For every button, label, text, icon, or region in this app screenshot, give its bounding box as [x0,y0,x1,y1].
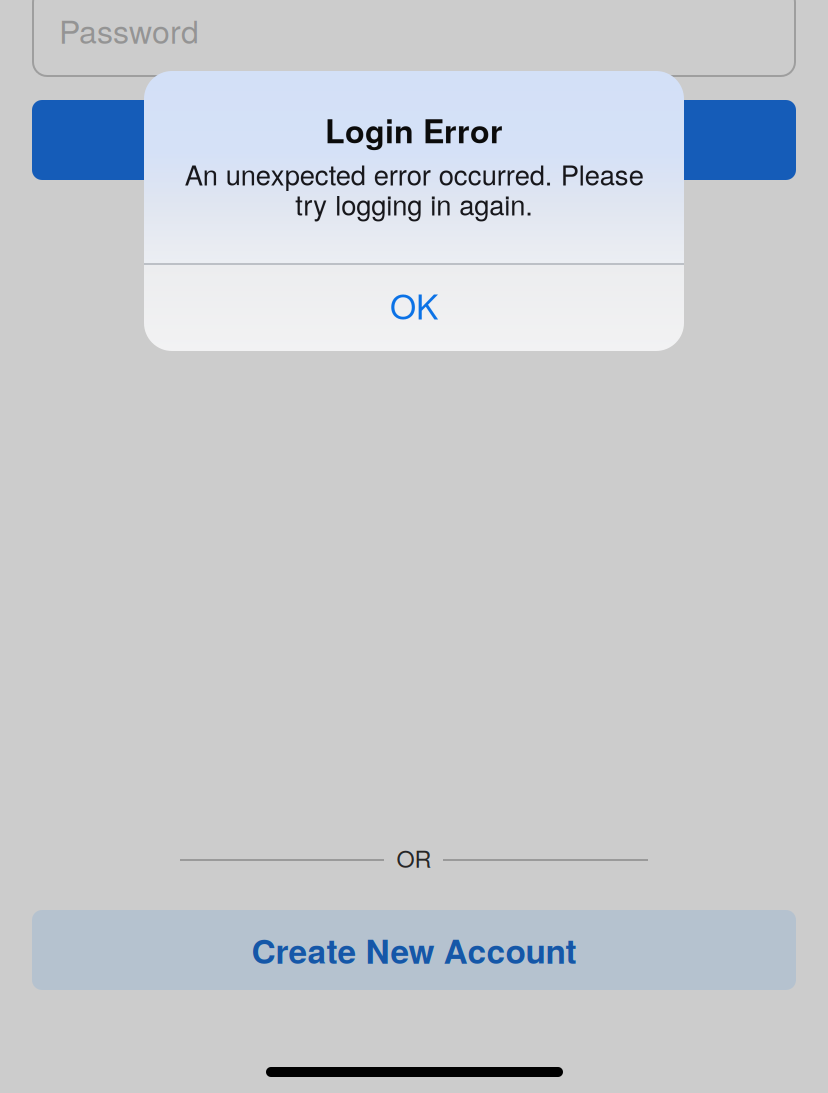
button[interactable]: OK [144,262,684,348]
button[interactable]: Create New Account [32,910,796,990]
staticText: OR [396,841,431,874]
staticText: OK [390,281,438,329]
staticText: Sign In [359,116,468,164]
button[interactable]: Sign In [32,100,796,180]
staticText: Login Error [325,107,503,153]
staticText: Create New Account [251,926,576,974]
button[interactable]: Password [33,0,795,76]
staticText: Password [59,7,199,53]
staticText: An unexpected error occurred. Please try… [184,154,643,223]
